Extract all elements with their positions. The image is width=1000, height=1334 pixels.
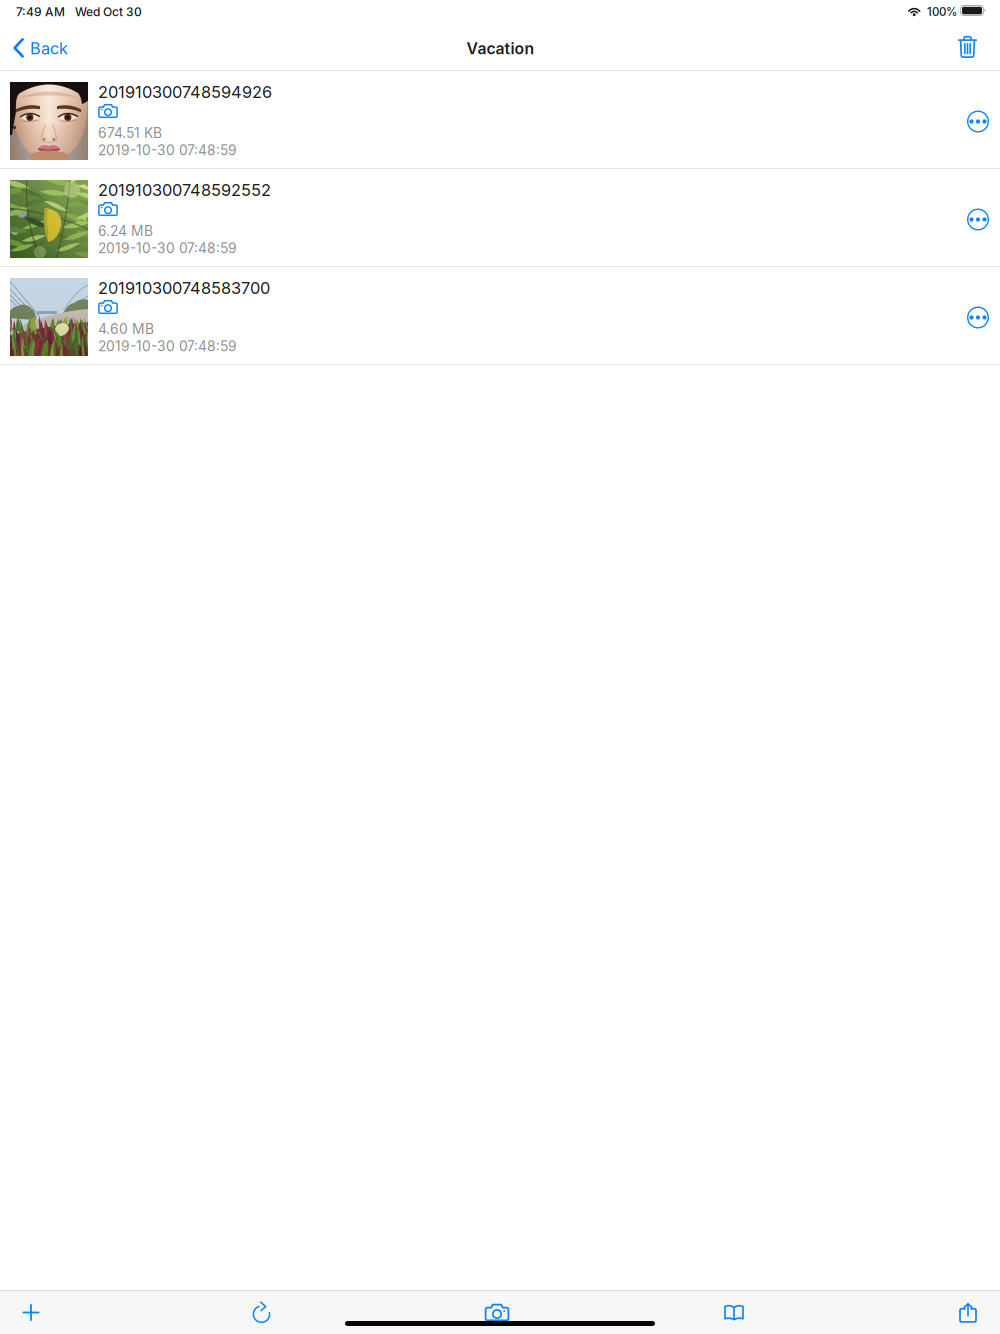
button[interactable]: More options	[949, 171, 1000, 268]
button[interactable]: Share	[937, 1291, 999, 1334]
staticText: 201910300748594926	[98, 82, 272, 102]
button[interactable]: Refresh	[231, 1291, 293, 1334]
button[interactable]: More options	[949, 73, 1000, 170]
staticText: 100%	[927, 5, 957, 19]
staticText: Wed Oct 30	[75, 4, 142, 19]
button[interactable]: 201910300748594926	[0, 71, 940, 169]
button[interactable]: Camera	[466, 1291, 528, 1334]
button[interactable]: Back	[0, 24, 80, 70]
button[interactable]: Library	[703, 1291, 765, 1334]
staticText: 6.24 MB	[98, 222, 153, 239]
staticText: 201910300748583700	[98, 278, 270, 298]
staticText: Vacation	[466, 39, 534, 58]
button[interactable]: More options	[949, 269, 1000, 366]
button[interactable]: 201910300748592552	[0, 169, 940, 267]
staticText: 7:49 AM	[16, 4, 65, 19]
staticText: 2019-10-30 07:48:59	[98, 338, 237, 355]
staticText: Back	[30, 38, 68, 58]
staticText: 2019-10-30 07:48:59	[98, 240, 237, 257]
staticText: 674.51 KB	[98, 124, 162, 141]
button[interactable]: Add	[0, 1291, 62, 1334]
button[interactable]: 201910300748583700	[0, 267, 940, 365]
staticText: 201910300748592552	[98, 180, 271, 200]
button[interactable]: Delete	[936, 24, 1000, 70]
staticText: 2019-10-30 07:48:59	[98, 142, 237, 159]
staticText: 4.60 MB	[98, 320, 154, 337]
